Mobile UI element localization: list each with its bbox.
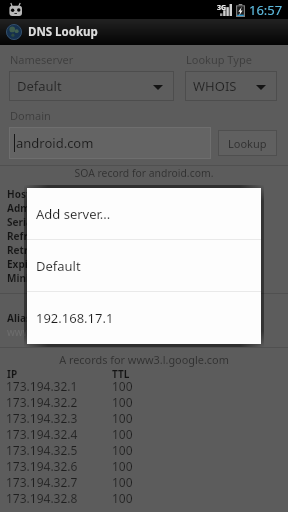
staticText: 100 (112, 426, 133, 442)
other: Battery charging (236, 4, 245, 17)
staticText: WHOIS (193, 77, 237, 95)
staticText: 100 (112, 378, 133, 394)
other: Notification (4, 2, 22, 18)
staticText: Alias (7, 311, 31, 325)
staticText: android.com (16, 134, 94, 152)
button[interactable]: Add server... (27, 188, 261, 239)
staticText: 100 (112, 474, 133, 490)
staticText: 173.194.32.4 (6, 426, 78, 442)
staticText: 192.168.17.1 (36, 309, 114, 327)
staticText: Domain (10, 108, 51, 123)
staticText: IP (7, 367, 18, 381)
staticText: 173.194.32.1 (6, 378, 78, 394)
staticText: Host (7, 187, 31, 201)
staticText: Refresh (7, 229, 46, 243)
staticText: DNS Lookup (28, 24, 98, 40)
staticText: TTL (112, 367, 130, 381)
button[interactable]: 192.168.17.1 (27, 292, 261, 343)
staticText: Lookup (228, 136, 267, 151)
staticText: Minimum (7, 271, 55, 285)
staticText: SOA record for android.com. (0, 166, 288, 180)
staticText: 173.194.32.7 (6, 474, 78, 490)
staticText: Admin (7, 201, 40, 215)
button[interactable]: android.com (9, 127, 211, 159)
staticText: 173.194.32.6 (6, 458, 78, 474)
staticText: Default (17, 77, 62, 95)
staticText: 100 (112, 410, 133, 426)
button[interactable]: Default (9, 71, 174, 101)
staticText: 100 (112, 394, 133, 410)
staticText: 173.194.32.2 (6, 394, 78, 410)
button[interactable]: WHOIS (185, 71, 277, 101)
staticText: Add server... (36, 205, 111, 223)
staticText: 3G (217, 3, 227, 13)
staticText: Retry (7, 243, 35, 257)
button[interactable]: Default (27, 240, 261, 291)
staticText: Default (36, 257, 81, 275)
staticText: www.google.com. (7, 325, 92, 339)
staticText: 100 (112, 442, 133, 458)
staticText: 173.194.32.3 (6, 410, 78, 426)
other: App icon (6, 24, 22, 40)
staticText: Expire (7, 257, 38, 271)
staticText: Nameserver (10, 52, 74, 67)
staticText: Lookup Type (186, 52, 252, 67)
staticText: 100 (112, 490, 133, 506)
staticText: 16:57 (249, 1, 283, 19)
staticText: 100 (112, 458, 133, 474)
staticText: A records for www3.l.google.com (0, 352, 288, 367)
staticText: Serial (7, 215, 35, 229)
staticText: 173.194.32.5 (6, 442, 78, 458)
staticText: 173.194.32.8 (6, 490, 78, 506)
other: Signal strength 3G (217, 2, 233, 18)
button[interactable]: Lookup (218, 130, 277, 156)
